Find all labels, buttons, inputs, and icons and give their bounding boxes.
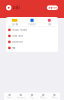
staticText: Offers	[40, 97, 46, 99]
staticText: Pay	[30, 97, 33, 99]
button[interactable]: Zelle	[41, 18, 58, 26]
button[interactable]: Help	[6, 45, 58, 51]
staticText: Account Services	[12, 29, 27, 31]
button[interactable]: Statements	[6, 39, 58, 45]
staticText: Credit Cards	[12, 35, 23, 37]
button[interactable]: Pay	[26, 92, 38, 100]
staticText: Sign On	[48, 6, 56, 9]
button[interactable]: Sign On	[47, 5, 58, 10]
button[interactable]: Offers	[38, 92, 49, 100]
staticText: Transfer	[28, 23, 36, 26]
staticText: Help	[12, 47, 15, 49]
staticText: Accounts	[17, 97, 25, 99]
staticText: More	[52, 97, 57, 99]
button[interactable]: More	[49, 92, 60, 100]
button[interactable]: Home	[4, 92, 15, 100]
staticText: Home	[7, 97, 12, 99]
staticText: citi	[13, 5, 20, 10]
button[interactable]: Credit Cards	[6, 33, 58, 39]
button[interactable]: Transfer	[23, 18, 41, 26]
staticText: Statements	[12, 41, 23, 43]
staticText: Zelle	[48, 23, 51, 26]
button[interactable]: Pay Bills	[6, 18, 23, 26]
staticText: Pay Bills	[12, 23, 18, 26]
button[interactable]: Accounts	[15, 92, 26, 100]
button[interactable]: Profile	[6, 5, 11, 10]
button[interactable]: Account Services	[6, 27, 58, 33]
